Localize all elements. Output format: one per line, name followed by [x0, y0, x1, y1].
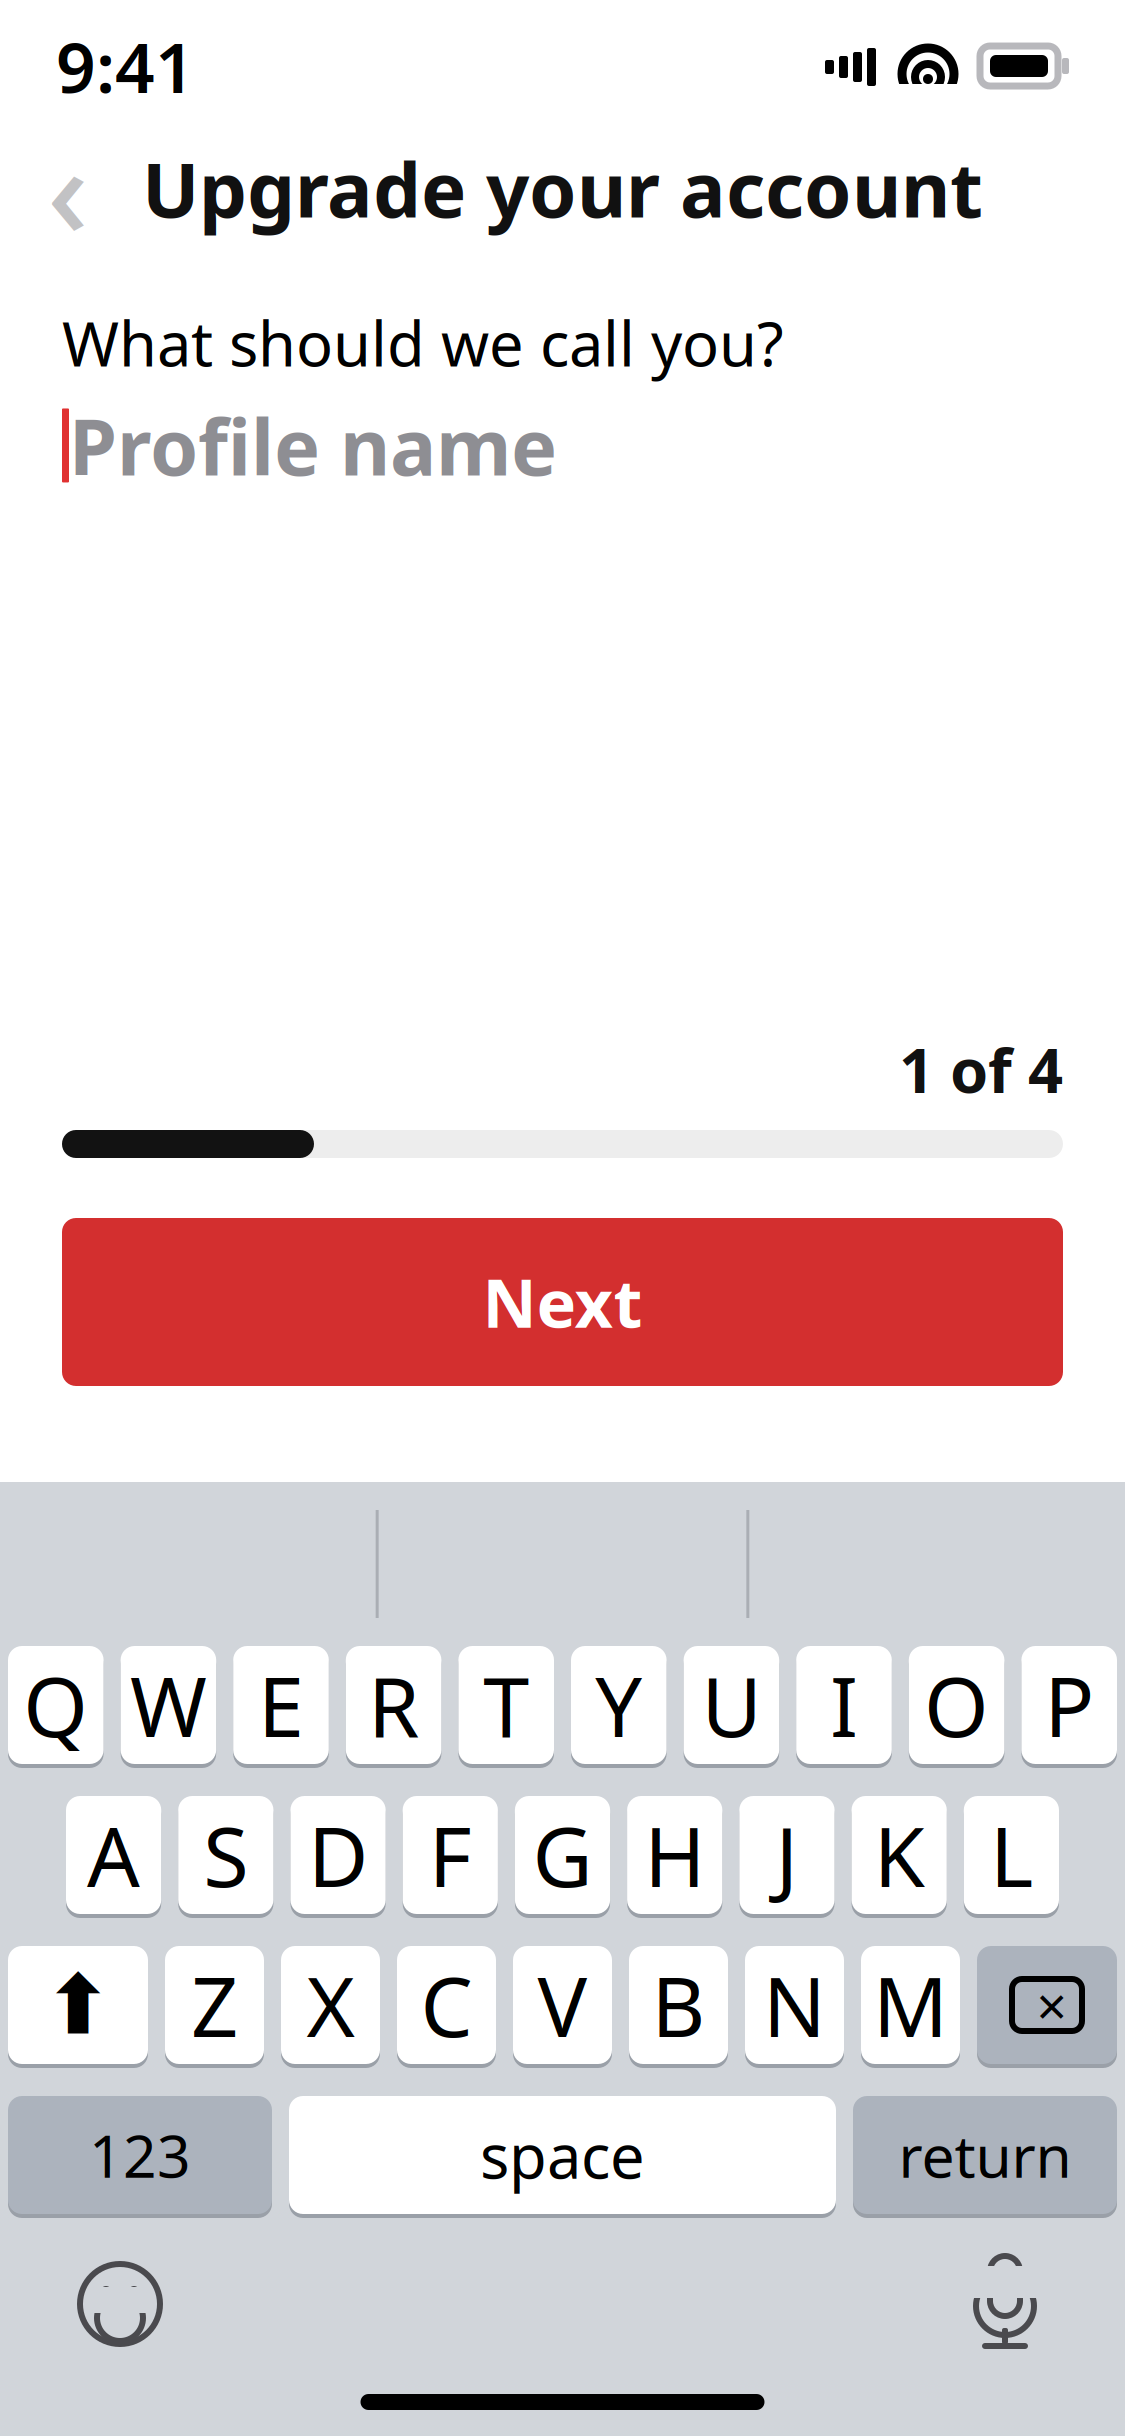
- button[interactable]: L: [964, 1796, 1059, 1914]
- button[interactable]: T: [458, 1646, 554, 1764]
- staticText: D: [308, 1800, 368, 1910]
- staticText: Upgrade your account: [142, 137, 983, 238]
- button[interactable]: I: [796, 1646, 892, 1764]
- button[interactable]: Back: [18, 103, 118, 273]
- button[interactable]: X: [281, 1946, 380, 2064]
- button[interactable]: Emoji: [64, 2248, 176, 2360]
- button[interactable]: Z: [165, 1946, 264, 2064]
- staticText: B: [651, 1950, 705, 2060]
- staticText: Profile name: [69, 394, 557, 497]
- staticText: A: [87, 1800, 140, 1910]
- staticText: M: [873, 1950, 948, 2060]
- staticText: K: [874, 1800, 925, 1910]
- button[interactable]: P: [1021, 1646, 1117, 1764]
- staticText: space: [480, 2114, 645, 2196]
- button[interactable]: S: [178, 1796, 273, 1914]
- staticText: return: [898, 2116, 1071, 2194]
- button[interactable]: Shift: [8, 1946, 148, 2064]
- staticText: Y: [595, 1650, 642, 1760]
- button[interactable]: G: [515, 1796, 610, 1914]
- button[interactable]: F: [403, 1796, 498, 1914]
- staticText: N: [763, 1950, 826, 2060]
- button[interactable]: J: [739, 1796, 834, 1914]
- staticText: X: [306, 1950, 354, 2060]
- button[interactable]: Delete: [977, 1946, 1117, 2064]
- button[interactable]: N: [745, 1946, 844, 2064]
- button[interactable]: Profile name: [62, 399, 1063, 491]
- staticText: W: [130, 1650, 207, 1760]
- staticText: V: [537, 1950, 587, 2060]
- button[interactable]: O: [909, 1646, 1004, 1764]
- staticText: 1 of 4: [899, 1029, 1063, 1110]
- staticText: ⬆: [43, 1958, 112, 2052]
- staticText: E: [258, 1650, 304, 1760]
- staticText: ×: [1036, 1970, 1067, 2040]
- staticText: 123: [89, 2116, 191, 2194]
- staticText: F: [429, 1800, 472, 1910]
- staticText: What should we call you?: [62, 302, 784, 383]
- staticText: R: [368, 1650, 419, 1760]
- staticText: L: [990, 1800, 1033, 1910]
- staticText: ‹: [47, 103, 89, 273]
- button[interactable]: E: [233, 1646, 329, 1764]
- staticText: Q: [23, 1650, 88, 1760]
- staticText: G: [532, 1800, 592, 1910]
- button[interactable]: W: [121, 1646, 216, 1764]
- staticText: 9:41: [56, 20, 195, 112]
- button[interactable]: 123: [8, 2096, 272, 2214]
- staticText: T: [483, 1650, 529, 1760]
- staticText: S: [203, 1800, 248, 1910]
- button[interactable]: H: [627, 1796, 722, 1914]
- button[interactable]: V: [513, 1946, 612, 2064]
- button[interactable]: Y: [571, 1646, 667, 1764]
- staticText: Next: [482, 1258, 642, 1346]
- button[interactable]: M: [861, 1946, 960, 2064]
- button[interactable]: D: [290, 1796, 386, 1914]
- button[interactable]: C: [397, 1946, 496, 2064]
- staticText: P: [1044, 1650, 1094, 1760]
- staticText: Z: [191, 1950, 238, 2060]
- button[interactable]: Dictation: [949, 2248, 1061, 2360]
- staticText: H: [644, 1800, 705, 1910]
- button[interactable]: Q: [8, 1646, 104, 1764]
- button[interactable]: return: [853, 2096, 1117, 2214]
- staticText: I: [830, 1650, 858, 1760]
- button[interactable]: space: [289, 2096, 836, 2214]
- button[interactable]: Next: [62, 1218, 1063, 1386]
- staticText: O: [924, 1650, 989, 1760]
- staticText: U: [701, 1650, 761, 1760]
- button[interactable]: A: [66, 1796, 161, 1914]
- button[interactable]: U: [684, 1646, 779, 1764]
- button[interactable]: B: [629, 1946, 728, 2064]
- staticText: C: [420, 1950, 472, 2060]
- button[interactable]: R: [346, 1646, 441, 1764]
- staticText: J: [775, 1800, 798, 1910]
- button[interactable]: K: [852, 1796, 947, 1914]
